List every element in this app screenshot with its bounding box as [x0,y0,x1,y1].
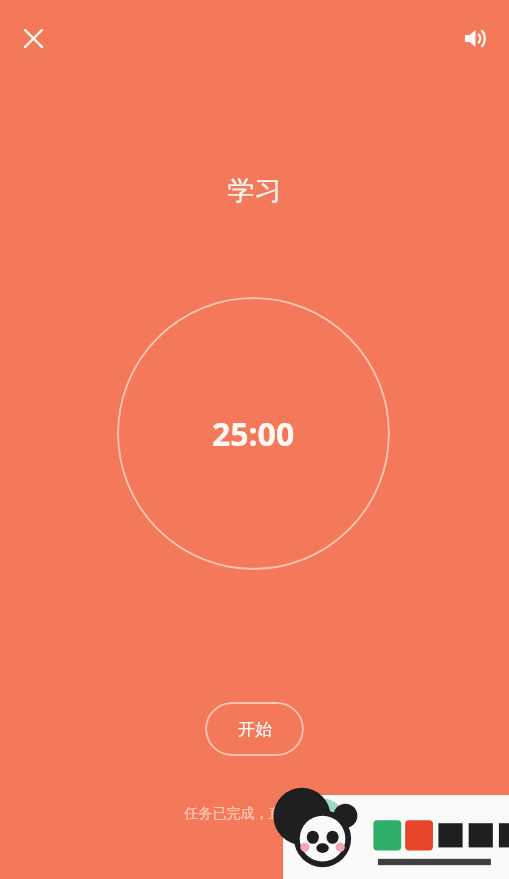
button[interactable]: Close [14,19,52,57]
staticText: 开始 [238,719,272,740]
button[interactable]: Sound [456,19,494,57]
staticText: 学习 [0,174,509,208]
staticText: 任务已完成，直接结束 [0,805,509,823]
button[interactable]: 开始 [205,702,304,756]
staticText: 25:00 [212,412,295,456]
button[interactable]: 25:00 [117,297,390,570]
